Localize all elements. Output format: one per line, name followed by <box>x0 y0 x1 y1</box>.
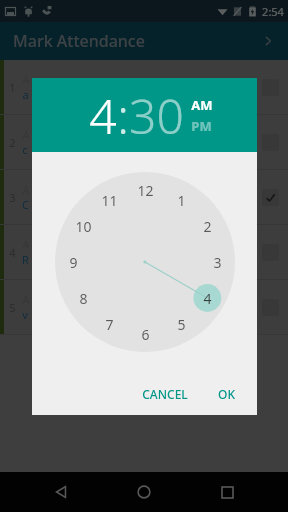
staticText: 1 <box>9 80 16 95</box>
staticText: 11 <box>101 191 118 210</box>
staticText: CANCEL <box>142 386 188 402</box>
button[interactable]: Hour 12 <box>132 177 158 203</box>
button[interactable]: Hour 3 <box>204 249 230 275</box>
button[interactable]: CANCEL <box>134 380 196 408</box>
button[interactable]: Hour 5 <box>168 311 194 337</box>
button[interactable]: Hour 2 <box>194 213 220 239</box>
button[interactable]: 3 <box>0 170 288 224</box>
button[interactable]: AM <box>191 96 213 114</box>
staticText: 2 <box>203 217 212 236</box>
button[interactable]: PM <box>191 117 212 135</box>
staticText: 30 <box>129 83 184 148</box>
staticText: 10 <box>75 217 92 236</box>
staticText: PM <box>191 117 212 135</box>
button[interactable]: 5 <box>0 280 288 334</box>
button[interactable]: Hour 7 <box>96 311 122 337</box>
button[interactable]: 30 <box>129 83 184 148</box>
staticText: v <box>22 307 28 322</box>
staticText: 4 <box>9 245 16 260</box>
button[interactable]: OK <box>210 380 243 408</box>
button[interactable]: Hour 11 <box>96 187 122 213</box>
staticText: 2:54 <box>262 4 284 19</box>
button[interactable]: Hour 9 <box>60 249 86 275</box>
button[interactable]: 4 <box>89 83 117 148</box>
staticText: c <box>22 142 28 157</box>
staticText: 1 <box>177 191 186 210</box>
button[interactable]: Next <box>256 29 280 53</box>
button[interactable]: 2 <box>0 115 288 169</box>
button[interactable]: Back <box>44 475 78 509</box>
button[interactable]: Hour 10 <box>70 213 96 239</box>
button[interactable]: 4 <box>0 225 288 279</box>
staticText: 9 <box>69 253 78 272</box>
button[interactable]: 1 <box>0 60 288 114</box>
staticText: 5 <box>177 315 186 334</box>
staticText: 2 <box>9 135 16 150</box>
staticText: a <box>22 87 29 102</box>
button[interactable]: Hour 8 <box>70 285 96 311</box>
staticText: OK <box>218 386 235 402</box>
button[interactable]: Toggle attendance <box>262 189 279 206</box>
staticText: 6 <box>141 325 150 344</box>
button[interactable]: Hour 6 <box>132 321 158 347</box>
staticText: 3 <box>213 253 222 272</box>
staticText: Mark Attendance <box>13 30 145 52</box>
staticText: AM <box>191 96 213 114</box>
staticText: 7 <box>105 315 114 334</box>
button[interactable]: Home <box>127 475 161 509</box>
staticText: : <box>117 83 129 148</box>
button[interactable]: Hour 1 <box>168 187 194 213</box>
staticText: 4 <box>203 289 212 308</box>
staticText: 12 <box>137 181 154 200</box>
staticText: R <box>22 252 29 267</box>
staticText: 5 <box>9 300 16 315</box>
staticText: 3 <box>9 190 16 205</box>
staticText: 4 <box>89 83 117 148</box>
staticText: 8 <box>79 289 88 308</box>
button[interactable]: Hour 4 <box>194 285 220 311</box>
staticText: C <box>22 197 29 212</box>
button[interactable]: Recents <box>210 475 244 509</box>
